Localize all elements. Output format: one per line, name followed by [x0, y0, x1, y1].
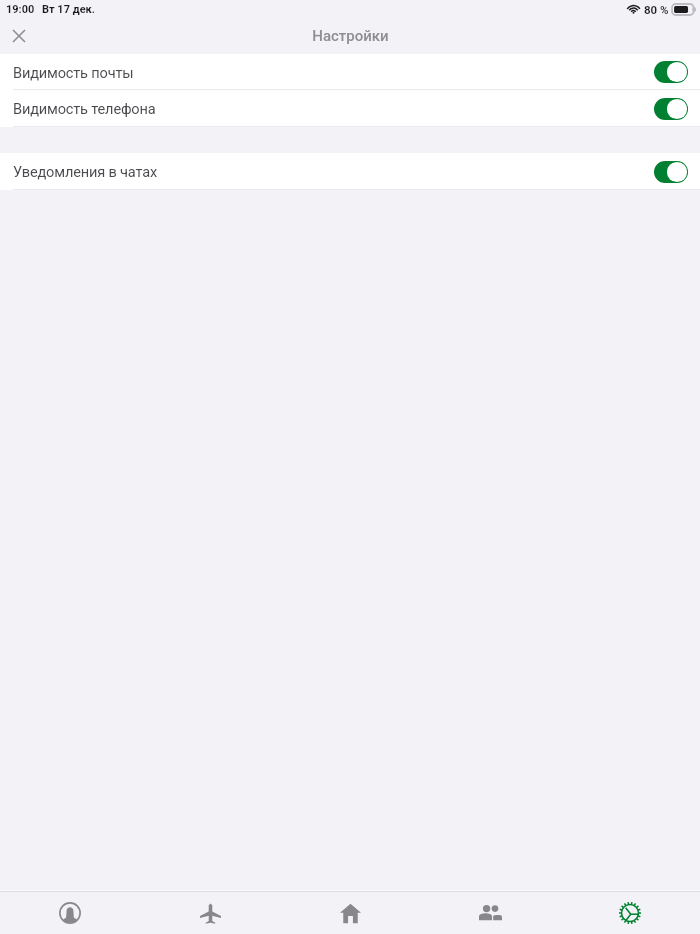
staticText: 80 % [644, 3, 669, 16]
staticText: Настройки [312, 27, 389, 45]
button[interactable]: Видимость телефона [0, 90, 700, 127]
button[interactable]: Путешествия [140, 892, 280, 934]
button[interactable]: Включено [654, 61, 688, 83]
staticText: Вт 17 дек. [42, 3, 95, 16]
button[interactable]: Контакты [420, 892, 560, 934]
staticText: Видимость почты [13, 64, 134, 81]
button[interactable]: Главная [280, 892, 420, 934]
button[interactable]: Настройки [560, 892, 700, 934]
staticText: 19:00 [6, 3, 35, 16]
button[interactable]: Профиль [0, 892, 140, 934]
button[interactable]: Видимость почты [0, 54, 700, 90]
staticText: Уведомления в чатах [13, 163, 158, 180]
button[interactable]: Включено [654, 161, 688, 183]
button[interactable]: Закрыть [5, 22, 32, 49]
button[interactable]: Включено [654, 98, 688, 120]
button[interactable]: Уведомления в чатах [0, 153, 700, 190]
staticText: Видимость телефона [13, 100, 156, 117]
